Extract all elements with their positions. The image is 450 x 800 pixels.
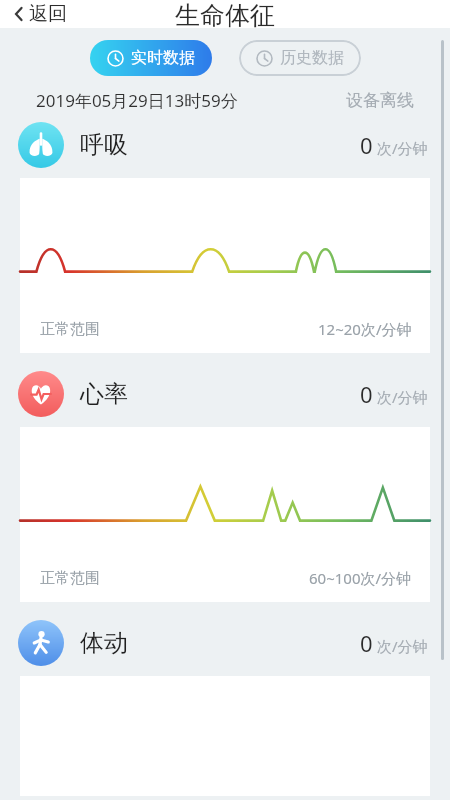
button[interactable]: 呼吸 [0, 118, 450, 172]
staticText: 正常范围 [40, 320, 100, 339]
button[interactable]: 历史数据 [239, 40, 361, 76]
staticText: 设备离线 [346, 90, 414, 111]
staticText: 12~20次/分钟 [318, 319, 412, 339]
button[interactable]: 返回 [10, 0, 71, 28]
button[interactable]: 实时数据 [90, 40, 212, 76]
staticText: 次/分钟 [377, 138, 428, 158]
staticText: 2019年05月29日13时59分 [36, 89, 238, 112]
other: 心率 [28, 381, 54, 407]
staticText: 正常范围 [40, 569, 100, 588]
staticText: 生命体征 [175, 0, 275, 28]
staticText: 次/分钟 [377, 387, 428, 407]
staticText: 次/分钟 [377, 636, 428, 656]
staticText: 呼吸 [80, 130, 128, 160]
staticText: 体动 [80, 628, 128, 658]
button[interactable]: 体动 [0, 616, 450, 670]
staticText: 60~100次/分钟 [309, 568, 412, 588]
staticText: 返回 [29, 2, 67, 26]
staticText: 0 [360, 130, 373, 160]
staticText: 0 [360, 379, 373, 409]
staticText: 历史数据 [280, 48, 344, 68]
staticText: 心率 [80, 379, 128, 409]
staticText: 0 [360, 628, 373, 658]
other: 体动 [28, 630, 54, 656]
staticText: 实时数据 [131, 48, 195, 68]
other: 呼吸 [28, 132, 54, 158]
button[interactable]: 心率 [0, 367, 450, 421]
